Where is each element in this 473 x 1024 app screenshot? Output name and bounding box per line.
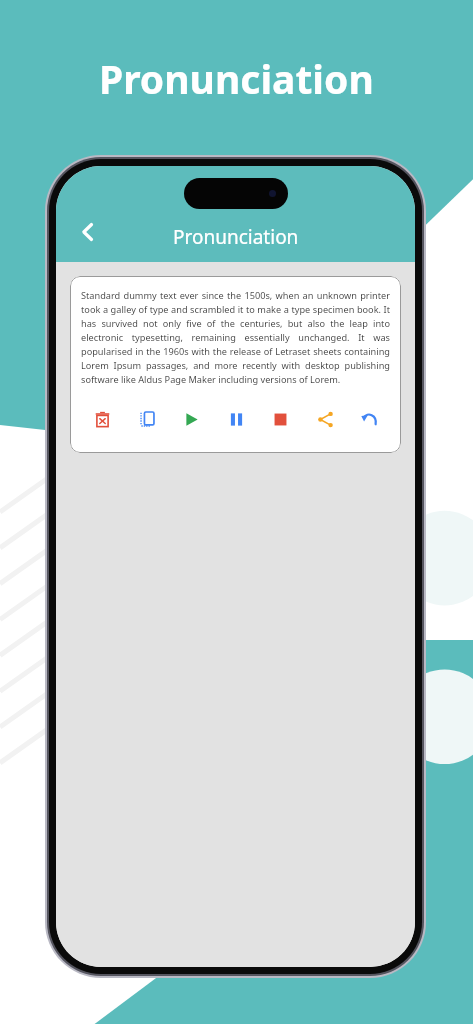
- button[interactable]: Stop: [265, 404, 295, 434]
- button[interactable]: Back: [66, 210, 110, 254]
- staticText: Pronunciation: [99, 52, 374, 105]
- button[interactable]: Delete: [87, 404, 117, 434]
- button[interactable]: Pause: [221, 404, 251, 434]
- button[interactable]: Play: [176, 404, 206, 434]
- staticText: Standard dummy text ever since the 1500s…: [81, 289, 390, 386]
- button[interactable]: Share: [310, 404, 340, 434]
- button[interactable]: Copy: [132, 404, 162, 434]
- button[interactable]: Undo: [354, 404, 384, 434]
- staticText: Pronunciation: [173, 224, 299, 250]
